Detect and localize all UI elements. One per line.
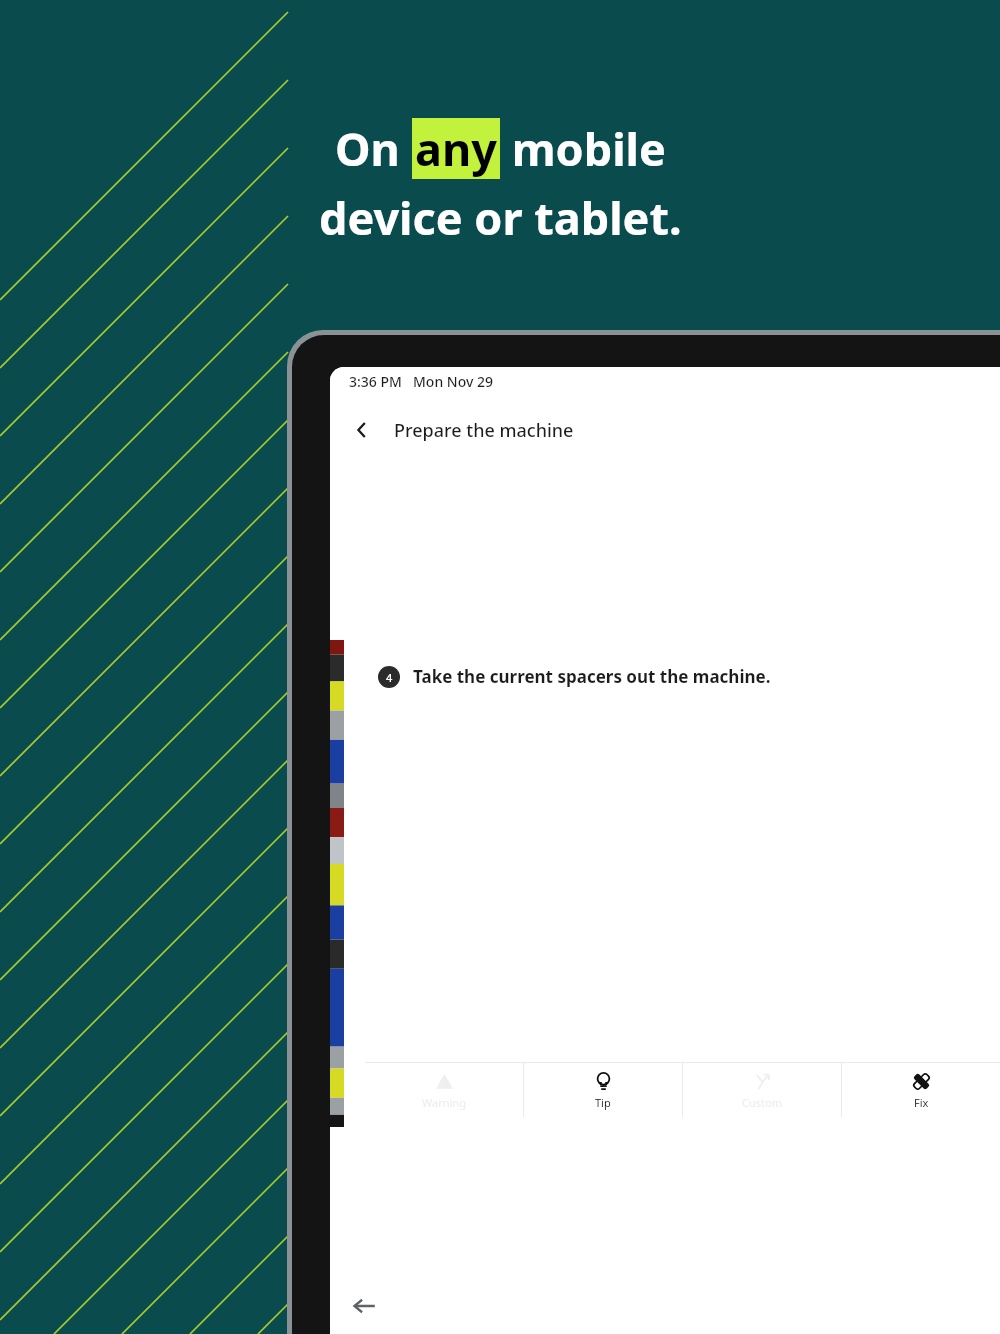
button[interactable]: Tip <box>524 1063 682 1117</box>
staticText: On <box>335 118 412 179</box>
staticText: mobile <box>500 118 666 179</box>
staticText: device or tablet. <box>319 187 682 248</box>
staticText: Custom <box>742 1095 782 1110</box>
staticText: 3:36 PM <box>349 372 402 391</box>
staticText: 4 <box>386 670 393 685</box>
button[interactable]: Fix <box>842 1063 1000 1117</box>
staticText: Mon Nov 29 <box>413 372 493 391</box>
staticText: Take the current spacers out the machine… <box>413 665 771 688</box>
staticText: any <box>415 118 497 179</box>
button[interactable]: Back <box>344 412 380 448</box>
staticText: Prepare the machine <box>394 418 574 443</box>
button[interactable]: 4 <box>365 637 1000 1117</box>
staticText: Warning <box>422 1095 466 1110</box>
staticText: Tip <box>595 1095 611 1110</box>
button[interactable]: Previous step <box>344 1286 384 1326</box>
staticText: Fix <box>914 1095 929 1110</box>
